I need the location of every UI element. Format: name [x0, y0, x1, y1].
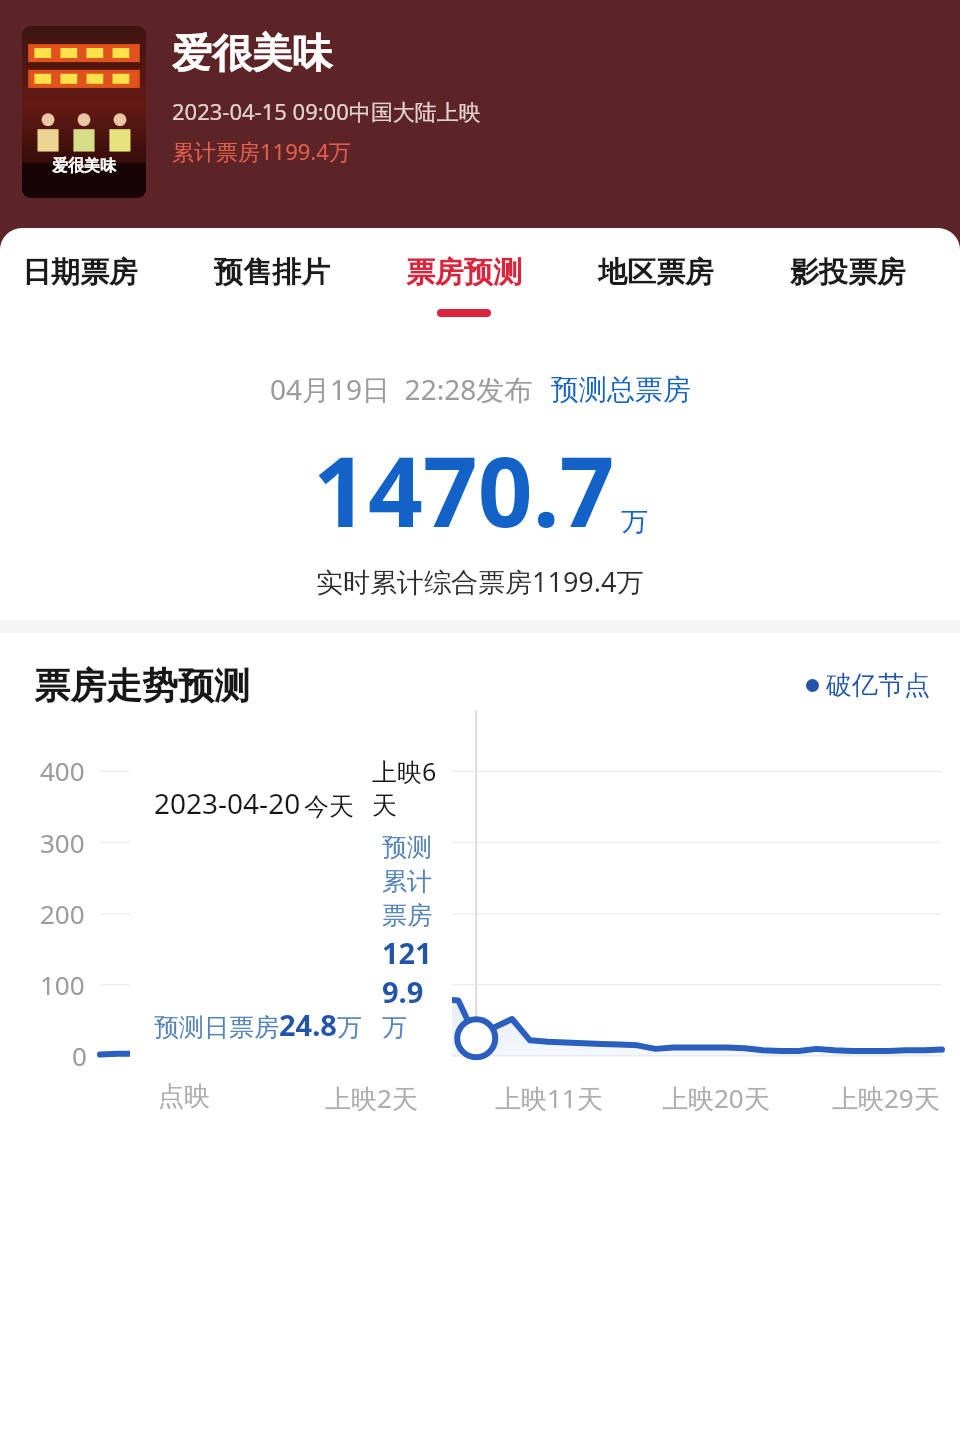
staticText: 1470.7	[313, 424, 615, 555]
staticText: 04月19日 22:28发布	[270, 370, 533, 408]
staticText: 今天	[304, 791, 354, 822]
staticText: 票房走势预测	[34, 663, 250, 708]
button[interactable]: 预测总票房	[551, 372, 691, 407]
staticText: 上映2天	[325, 1080, 418, 1116]
staticText: 实时累计综合票房1199.4万	[316, 563, 644, 600]
staticText: 影投票房	[790, 254, 906, 291]
staticText: 万	[621, 505, 648, 539]
staticText: 爱很美味	[172, 28, 332, 78]
staticText: 上映11天	[495, 1080, 603, 1116]
staticText: 预测累计票房1219.9万	[382, 832, 438, 1044]
staticText: 0	[72, 1038, 87, 1073]
staticText: 2023-04-20	[154, 784, 301, 822]
staticText: 2023-04-15 09:00中国大陆上映	[172, 96, 481, 126]
staticText: 破亿节点	[826, 669, 930, 702]
staticText: 地区票房	[598, 254, 714, 291]
staticText: 累计票房1199.4万	[172, 136, 351, 166]
staticText: 点映	[158, 1080, 210, 1113]
staticText: 上映20天	[662, 1080, 770, 1116]
staticText: 上映6天	[372, 754, 438, 822]
staticText: 300	[40, 825, 85, 860]
staticText: 预测日票房24.8万	[154, 1005, 362, 1044]
staticText: 票房预测	[406, 254, 522, 291]
button[interactable]: 票房预测	[368, 228, 560, 340]
staticText: 400	[40, 753, 85, 788]
button[interactable]: Movie poster 爱很美味	[22, 26, 146, 198]
staticText: 200	[40, 896, 85, 931]
staticText: 上映29天	[832, 1080, 940, 1116]
button[interactable]: 破亿节点	[806, 669, 930, 702]
button[interactable]: 日期票房	[0, 228, 176, 340]
button[interactable]: 2023-04-20	[130, 734, 452, 1068]
button[interactable]: 影投票房	[752, 228, 944, 340]
staticText: 爱很美味	[52, 156, 116, 176]
staticText: 预售排片	[214, 254, 330, 291]
button[interactable]: 地区票房	[560, 228, 752, 340]
staticText: 100	[40, 967, 85, 1002]
staticText: 日期票房	[22, 254, 138, 291]
button[interactable]: 预售排片	[176, 228, 368, 340]
